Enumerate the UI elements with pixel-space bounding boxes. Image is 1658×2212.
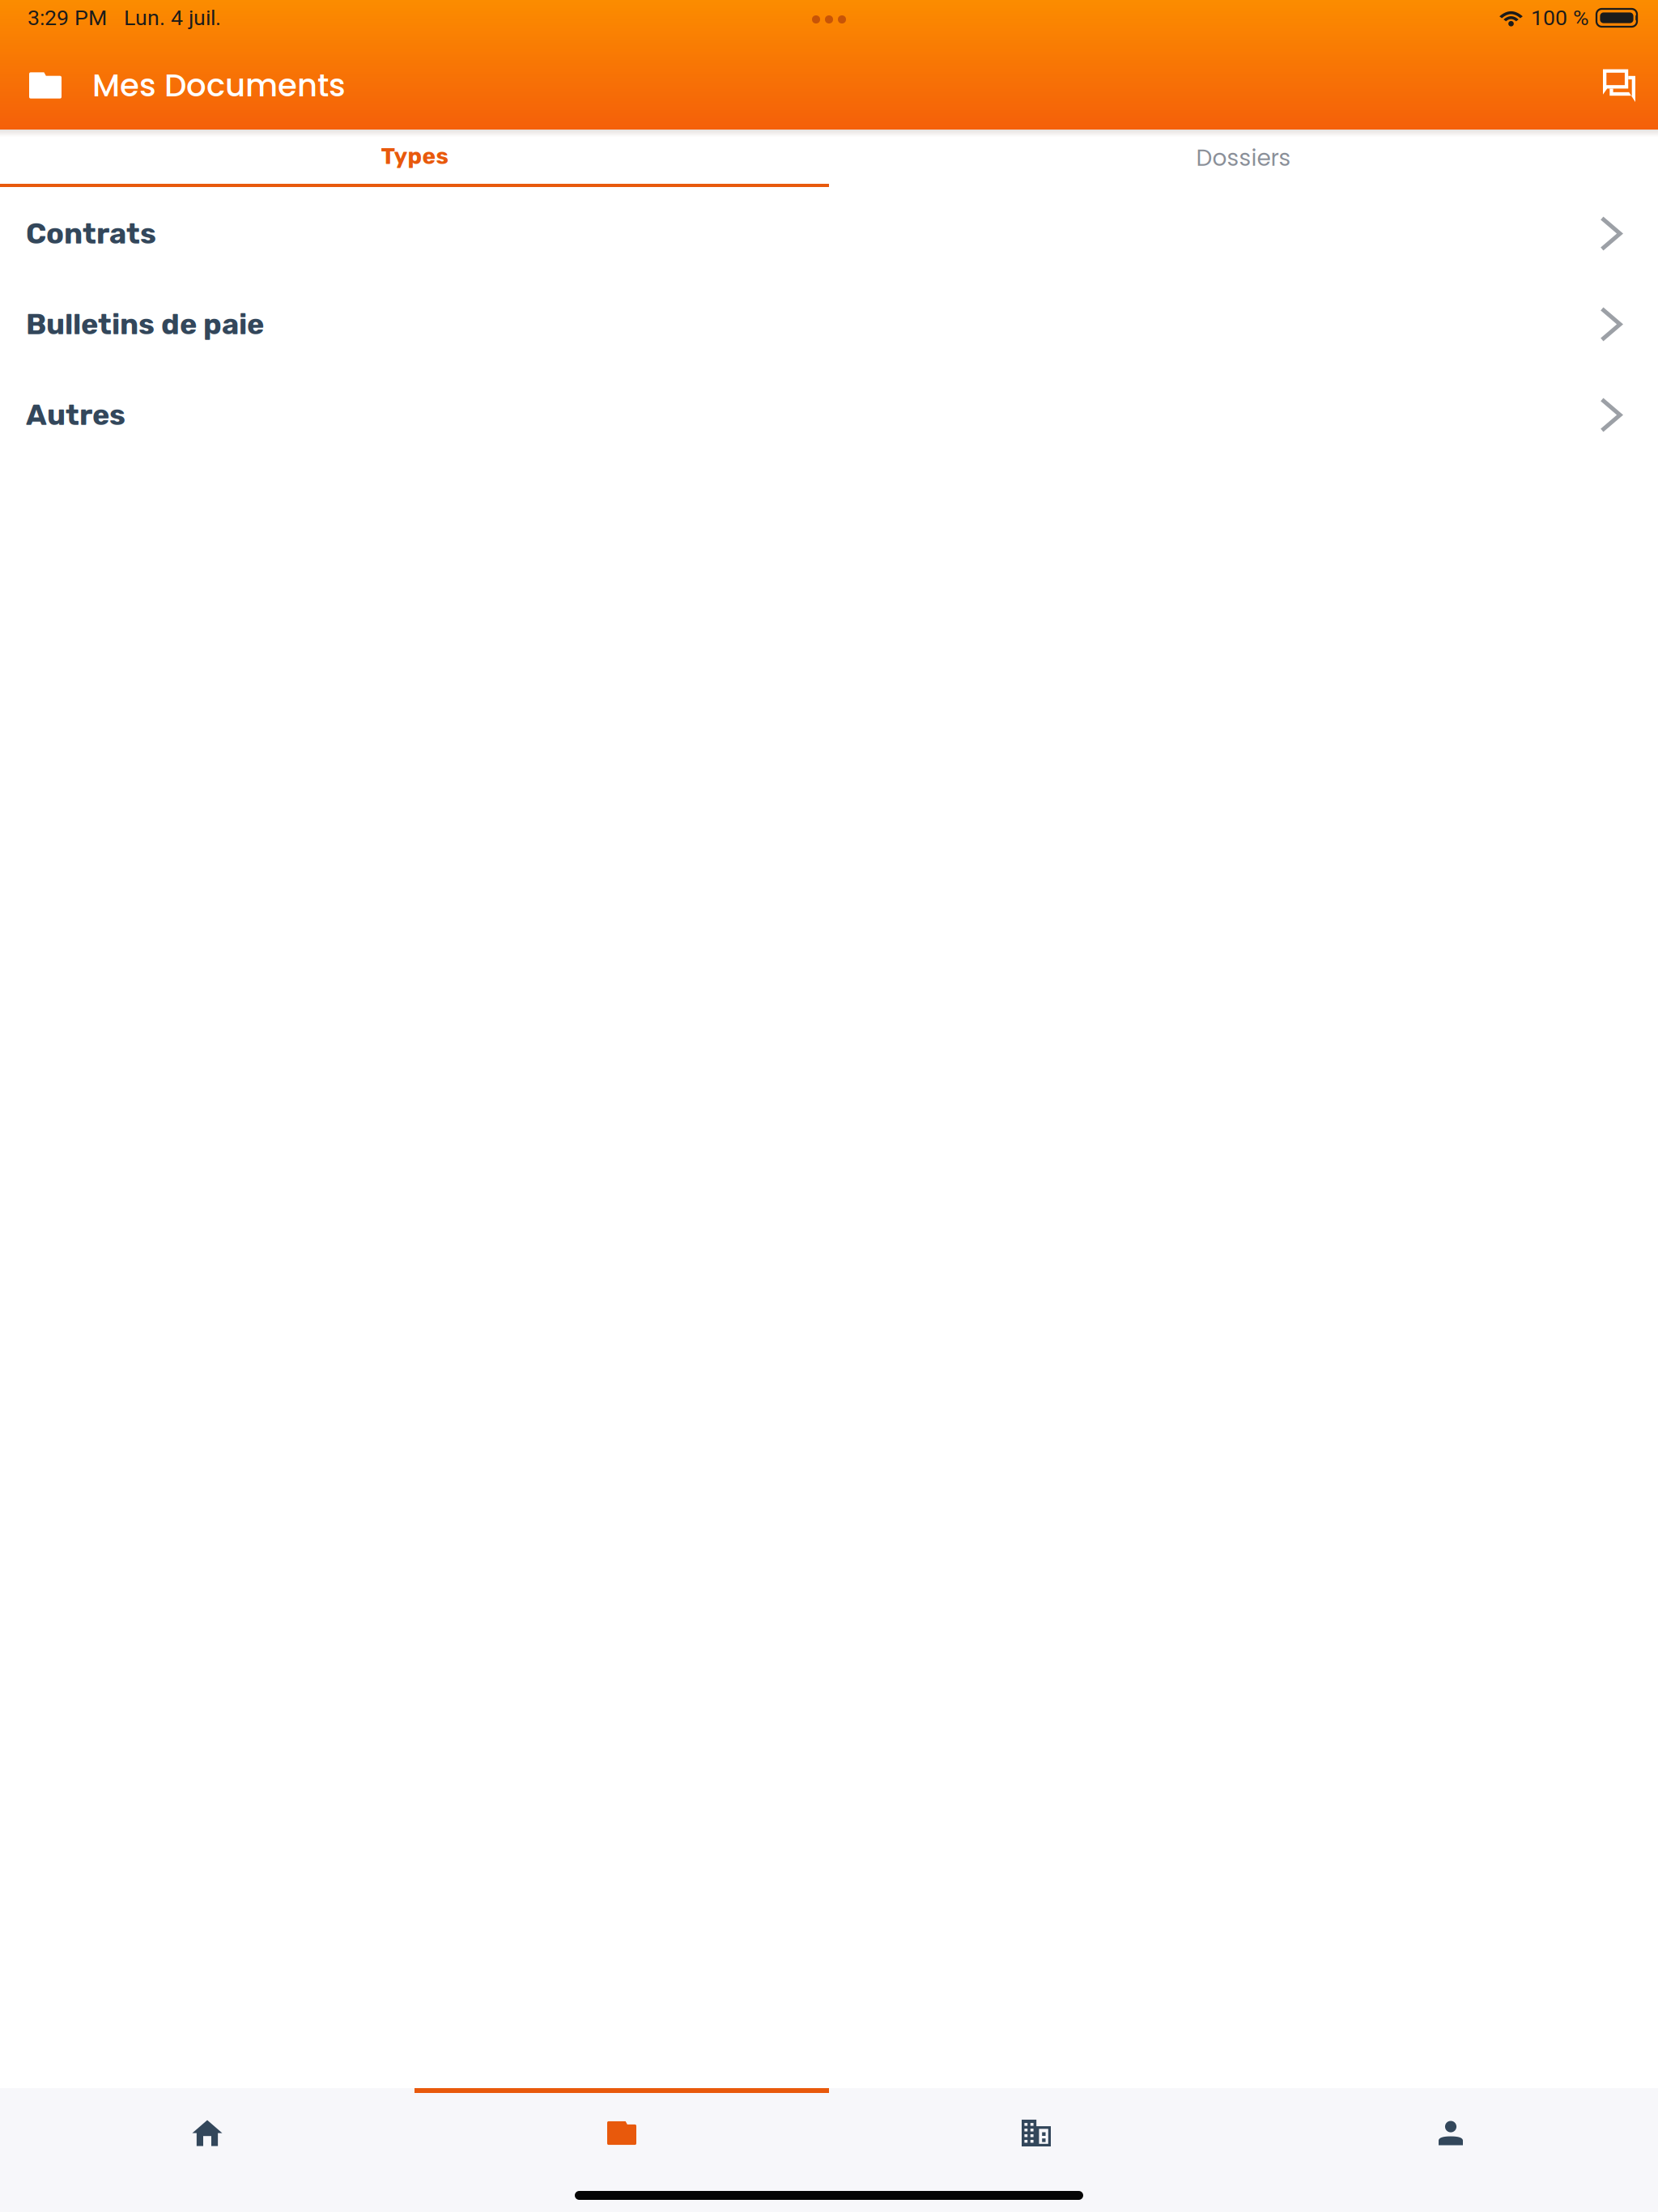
button[interactable]: Bulletins de paie	[0, 278, 1658, 368]
button[interactable]: Contrats	[0, 187, 1658, 278]
button[interactable]: Messages	[1592, 58, 1647, 113]
staticText: 3:29 PM Lun. 4 juil.	[28, 5, 221, 31]
button[interactable]: Accueil	[0, 2120, 414, 2146]
staticText: Mes Documents	[92, 63, 346, 107]
button[interactable]: Dossiers	[829, 138, 1658, 187]
button[interactable]: Entreprise	[829, 2120, 1243, 2146]
staticText: Autres	[26, 398, 125, 432]
staticText: Types	[381, 143, 448, 170]
staticText: 100 %	[1531, 5, 1589, 31]
button[interactable]: Types	[0, 138, 829, 187]
staticText: Bulletins de paie	[26, 307, 264, 342]
button[interactable]: Autres	[0, 368, 1658, 459]
staticText: Contrats	[26, 216, 156, 251]
button[interactable]: Profil	[1243, 2120, 1658, 2146]
button[interactable]: Documents	[414, 2120, 829, 2146]
staticText: Dossiers	[1196, 142, 1291, 174]
